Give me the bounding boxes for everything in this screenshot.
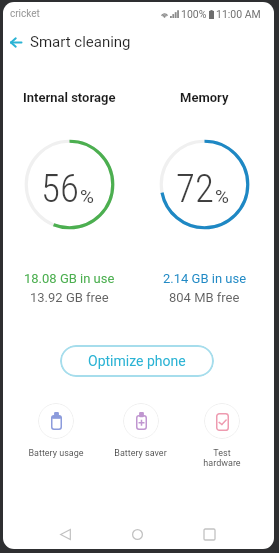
button[interactable]: Back	[47, 516, 83, 549]
staticText: Test hardware	[203, 448, 241, 468]
staticText: Smart cleaning	[30, 33, 131, 51]
staticText: 100%	[181, 8, 207, 20]
staticText: %	[215, 185, 229, 207]
staticText: 2.14 GB in use	[163, 271, 247, 286]
staticText: Memory	[180, 90, 229, 105]
button[interactable]: Battery saver	[98, 403, 182, 459]
staticText: 56	[41, 166, 79, 212]
button[interactable]: Recent apps	[191, 516, 227, 549]
staticText: Battery saver	[114, 448, 167, 459]
button[interactable]: Back	[4, 30, 28, 54]
staticText: %	[80, 185, 94, 207]
button[interactable]: Optimize phone	[60, 345, 214, 377]
staticText: Battery usage	[28, 448, 84, 459]
staticText: cricket	[10, 8, 40, 20]
staticText: Optimize phone	[88, 353, 186, 369]
staticText: 72	[176, 166, 214, 212]
staticText: Internal storage	[23, 90, 116, 105]
button[interactable]: Home	[119, 516, 155, 549]
button[interactable]: Battery usage	[14, 403, 98, 459]
staticText: 11:00 AM	[216, 8, 261, 20]
button[interactable]: Test hardware	[180, 403, 264, 468]
staticText: 13.92 GB free	[30, 290, 109, 305]
staticText: 804 MB free	[169, 290, 240, 305]
staticText: 18.08 GB in use	[24, 271, 115, 286]
